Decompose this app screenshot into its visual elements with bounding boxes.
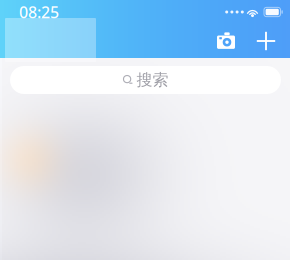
- staticText: 搜索: [136, 70, 168, 90]
- button[interactable]: Add: [251, 26, 281, 56]
- staticText: 08:25: [19, 1, 59, 23]
- button[interactable]: Search: [10, 66, 281, 94]
- button[interactable]: Camera: [211, 26, 241, 56]
